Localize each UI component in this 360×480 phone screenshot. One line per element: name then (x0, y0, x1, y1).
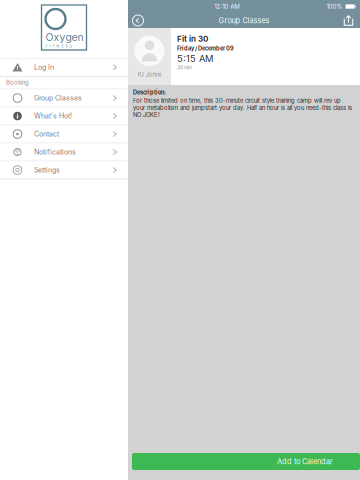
button[interactable]: Add to Calendar (132, 453, 360, 470)
staticText: 30 min (177, 64, 192, 70)
staticText: PJ Johns (137, 71, 161, 78)
staticText: Booking (6, 79, 29, 86)
button[interactable]: Share (343, 14, 354, 26)
button[interactable]: Log In (0, 59, 128, 77)
staticText: Group Classes (218, 16, 269, 25)
staticText: Description: (133, 89, 166, 96)
staticText: Settings (34, 166, 60, 174)
staticText: Notifications (34, 148, 76, 156)
staticText: Add to Calendar (277, 457, 333, 466)
staticText: Group Classes (34, 94, 82, 102)
button[interactable]: Back (131, 13, 145, 27)
staticText: Oxygen (45, 31, 83, 44)
staticText: Fit in 30 (177, 34, 208, 44)
staticText: F I T N E S S (45, 44, 71, 48)
staticText: Log In (34, 63, 54, 72)
button[interactable]: Notifications (0, 143, 128, 161)
button[interactable]: Group Classes (0, 89, 128, 107)
staticText: Friday / December 09 (177, 45, 234, 52)
button[interactable]: Settings (0, 161, 128, 179)
staticText: 12:10 AM (214, 3, 240, 10)
button[interactable]: What's Hot! (0, 107, 128, 125)
button[interactable]: Contact (0, 125, 128, 143)
staticText: 5:15 AM (177, 53, 213, 64)
staticText: For those limited on time, this 30-minut… (133, 97, 352, 118)
staticText: Contact (34, 130, 59, 138)
staticText: What's Hot! (34, 112, 72, 120)
staticText: 100% (327, 3, 343, 10)
